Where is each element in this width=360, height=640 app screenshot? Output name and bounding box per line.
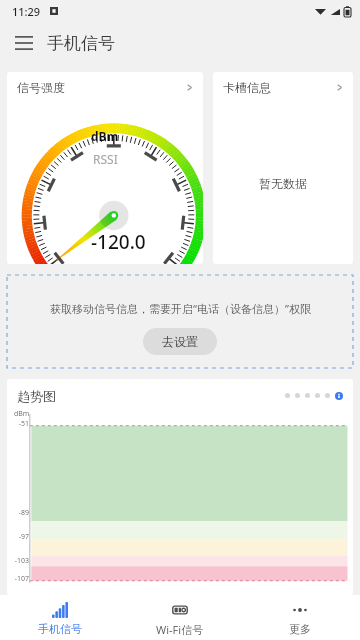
staticText: -103 bbox=[9, 556, 29, 566]
staticText: -120.0 bbox=[91, 229, 146, 255]
button[interactable]: Wi-Fi信号 bbox=[120, 595, 240, 640]
button[interactable]: 手机信号 bbox=[0, 595, 120, 640]
staticText: 获取移动信号信息，需要开启“电话（设备信息）”权限 bbox=[50, 301, 311, 316]
staticText: -97 bbox=[9, 532, 29, 542]
staticText: 暂无数据 bbox=[259, 176, 307, 191]
staticText: -89 bbox=[9, 508, 29, 518]
staticText: 信号强度 bbox=[17, 80, 65, 95]
staticText: dBm bbox=[91, 128, 119, 144]
staticText: 卡槽信息 bbox=[223, 80, 271, 95]
button[interactable]: 卡槽信息 bbox=[213, 72, 353, 102]
button[interactable]: 信号强度 bbox=[7, 72, 203, 264]
staticText: 手机信号 bbox=[38, 622, 82, 636]
staticText: 趋势图 bbox=[17, 388, 56, 404]
staticText: 更多 bbox=[289, 622, 311, 636]
button[interactable]: 信号强度 bbox=[7, 72, 203, 102]
staticText: -51 bbox=[9, 419, 29, 429]
button[interactable]: 去设置 bbox=[143, 328, 217, 355]
button[interactable]: 卡槽信息 bbox=[213, 72, 353, 264]
button[interactable]: Info bbox=[335, 392, 343, 400]
button[interactable]: Menu bbox=[7, 26, 41, 60]
staticText: dBm bbox=[14, 409, 30, 419]
staticText: -107 bbox=[9, 574, 29, 584]
staticText: RSSI bbox=[93, 151, 118, 167]
staticText: 手机信号 bbox=[47, 33, 115, 54]
button[interactable]: 更多 bbox=[240, 595, 360, 640]
staticText: 去设置 bbox=[162, 334, 198, 349]
button[interactable]: 获取移动信号信息，需要开启“电话（设备信息）”权限 bbox=[7, 275, 353, 368]
button[interactable]: 趋势图 bbox=[7, 379, 353, 412]
staticText: 11:29 bbox=[12, 4, 41, 19]
staticText: Wi-Fi信号 bbox=[156, 622, 204, 637]
